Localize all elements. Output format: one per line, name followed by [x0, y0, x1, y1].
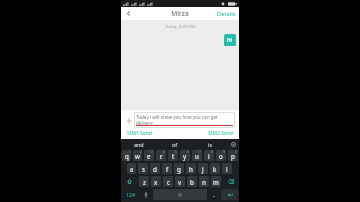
button[interactable]: n — [199, 176, 209, 187]
button[interactable]: f — [162, 163, 172, 174]
button[interactable]: q — [122, 150, 131, 161]
staticText: is — [208, 141, 212, 148]
staticText: m — [213, 178, 219, 186]
button[interactable]: SIM1 Send — [127, 130, 152, 137]
staticText: z — [143, 178, 146, 186]
button[interactable]: 12# — [122, 189, 139, 200]
staticText: delivery — [136, 120, 153, 126]
button[interactable]: Shift — [122, 176, 137, 187]
button[interactable]: Back — [121, 7, 135, 20]
button[interactable]: s — [138, 163, 148, 174]
button[interactable]: of — [157, 139, 192, 149]
button[interactable]: w — [133, 150, 142, 161]
button[interactable]: Today i will show you how you can get — [136, 114, 233, 126]
staticText: d — [153, 165, 157, 173]
button[interactable]: is — [192, 139, 227, 149]
button[interactable]: i — [204, 150, 214, 161]
staticText: Mirza — [171, 9, 189, 18]
staticText: f — [166, 165, 169, 173]
staticText: SIM2 Send — [208, 130, 233, 137]
button[interactable]: Emoji — [140, 188, 152, 201]
staticText: j — [202, 165, 204, 173]
staticText: x — [154, 178, 158, 186]
staticText: . — [213, 191, 215, 199]
button[interactable]: z — [139, 176, 149, 187]
staticText: 12# — [126, 191, 136, 198]
staticText: Hi — [227, 37, 233, 44]
staticText: r — [160, 152, 163, 160]
staticText: y — [183, 152, 187, 160]
staticText: l — [226, 165, 228, 173]
staticText: of — [172, 141, 178, 148]
button[interactable]: g — [174, 163, 184, 174]
button[interactable]: e — [144, 150, 154, 161]
staticText: g — [177, 165, 181, 173]
staticText: i — [208, 152, 210, 160]
staticText: 5 — [175, 150, 177, 154]
staticText: Today, 9:41 PM — [121, 24, 239, 30]
button[interactable]: l — [222, 163, 232, 174]
button[interactable]: k — [210, 163, 220, 174]
staticText: c — [167, 178, 170, 186]
staticText: n — [202, 178, 206, 186]
button[interactable]: r — [156, 150, 166, 161]
button[interactable]: and — [121, 139, 157, 149]
staticText: and — [134, 141, 144, 148]
staticText: a — [130, 165, 134, 173]
button[interactable]: Backspace — [223, 176, 238, 187]
button[interactable]: c — [163, 176, 173, 187]
staticText: v — [178, 178, 182, 186]
button[interactable]: j — [198, 163, 208, 174]
staticText: e — [147, 152, 151, 160]
button[interactable]: Space — [153, 189, 207, 200]
staticText: 6 — [187, 150, 189, 154]
staticText: b — [190, 178, 194, 186]
button[interactable]: u — [192, 150, 202, 161]
button[interactable]: b — [187, 176, 197, 187]
staticText: 4 — [163, 150, 165, 154]
staticText: 9 — [223, 150, 225, 154]
button[interactable]: SIM2 Send — [208, 130, 233, 137]
staticText: 2 — [140, 150, 142, 154]
button[interactable]: Keyboard settings — [227, 139, 239, 149]
button[interactable]: h — [186, 163, 196, 174]
staticText: u — [195, 152, 199, 160]
button[interactable]: x — [151, 176, 161, 187]
staticText: s — [142, 165, 145, 173]
staticText: Today i will show you how you can get — [136, 114, 218, 120]
button[interactable]: p — [228, 150, 238, 161]
staticText: 8 — [211, 150, 213, 154]
button[interactable]: . — [208, 188, 220, 201]
button[interactable]: Hi — [224, 34, 236, 46]
staticText: w — [135, 152, 140, 160]
staticText: k — [213, 165, 217, 173]
button[interactable]: t — [168, 150, 178, 161]
staticText: p — [231, 152, 235, 160]
button[interactable]: y — [180, 150, 190, 161]
button[interactable]: Details — [217, 10, 236, 18]
staticText: 7 — [199, 150, 201, 154]
button[interactable]: o — [216, 150, 226, 161]
staticText: 3 — [151, 150, 153, 154]
staticText: Details — [217, 10, 236, 18]
staticText: 0 — [235, 150, 237, 154]
button[interactable]: d — [150, 163, 160, 174]
staticText: h — [189, 165, 193, 173]
staticText: 1 — [129, 150, 131, 154]
staticText: SIM1 Send — [127, 130, 152, 137]
button[interactable]: v — [175, 176, 185, 187]
staticText: o — [219, 152, 223, 160]
button[interactable]: Add attachment — [123, 115, 134, 126]
staticText: q — [125, 152, 129, 160]
staticText: t — [172, 152, 175, 160]
button[interactable]: m — [211, 176, 221, 187]
button[interactable]: Enter — [221, 189, 238, 200]
button[interactable]: a — [127, 163, 136, 174]
